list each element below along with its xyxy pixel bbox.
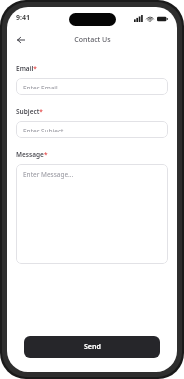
staticText: Email* <box>16 64 37 73</box>
button[interactable]: Enter Subject <box>16 121 168 138</box>
staticText: Enter Message... <box>23 170 74 179</box>
button[interactable]: Enter Message... <box>16 164 168 264</box>
button[interactable]: Send <box>24 336 160 358</box>
button[interactable]: Back <box>12 31 29 48</box>
staticText: Contact Us <box>74 35 111 45</box>
staticText: Enter Email <box>23 84 58 89</box>
staticText: Enter Subject <box>23 127 64 132</box>
button[interactable]: Enter Email <box>16 78 168 95</box>
staticText: Send <box>84 342 101 352</box>
staticText: 9:41 <box>16 13 30 23</box>
staticText: Subject* <box>16 107 43 116</box>
staticText: Message* <box>16 150 48 159</box>
